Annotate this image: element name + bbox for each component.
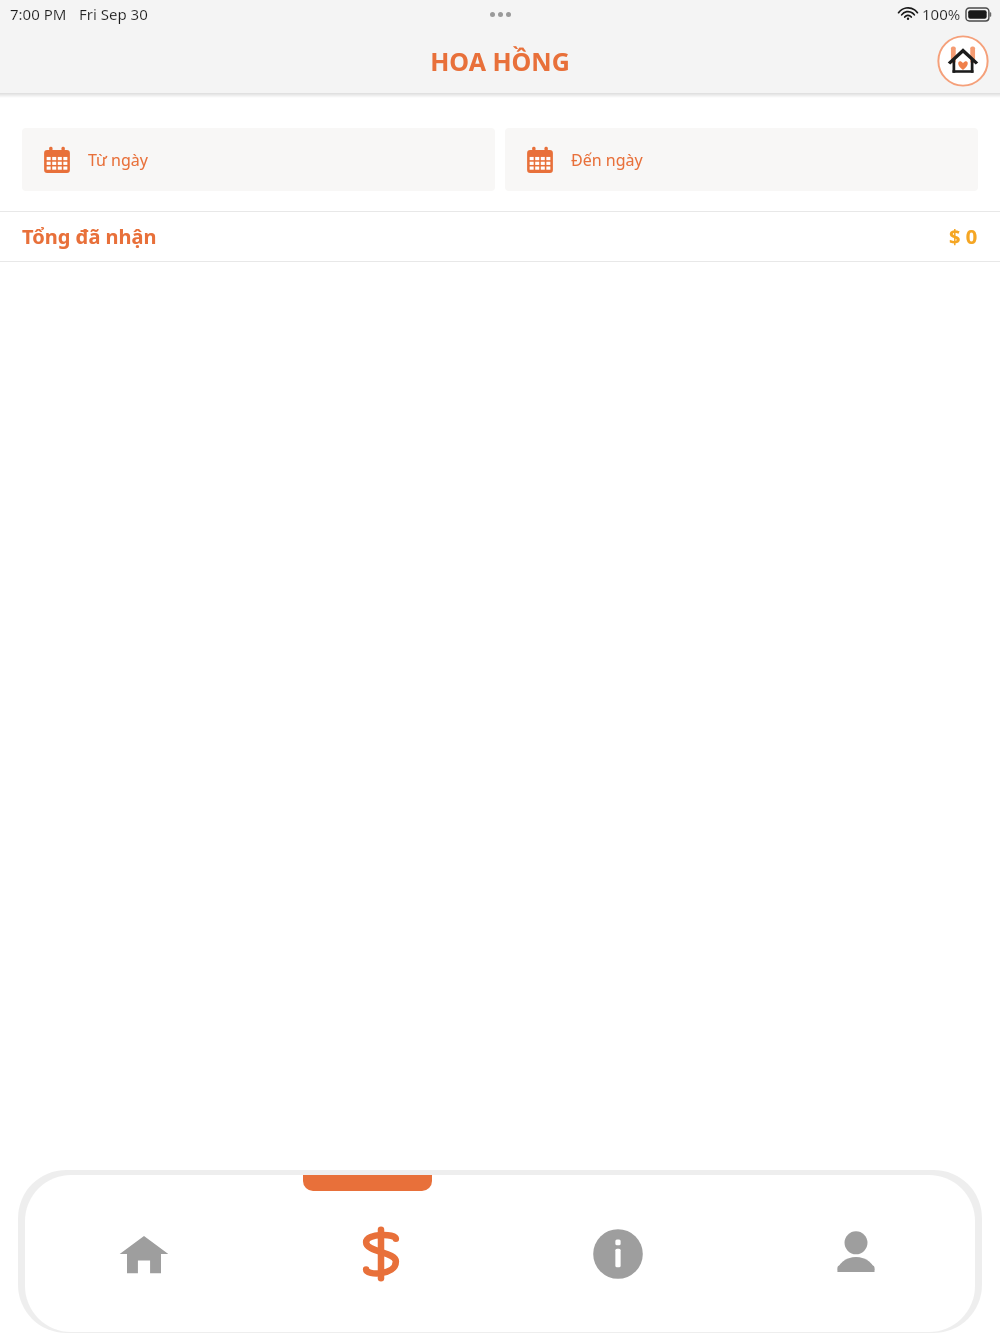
button[interactable]: Home — [25, 1175, 262, 1332]
staticText: $ 0 — [949, 223, 978, 250]
staticText: HOA HỒNG — [430, 44, 570, 78]
button[interactable]: Đến ngày — [505, 128, 978, 191]
staticText: 7:00 PM — [10, 4, 67, 24]
button[interactable]: Home logo — [934, 32, 992, 90]
button[interactable]: Tổng đã nhận — [0, 212, 1000, 261]
button[interactable]: Account — [737, 1175, 975, 1332]
staticText: Đến ngày — [571, 149, 643, 171]
button[interactable]: Information — [499, 1175, 737, 1332]
staticText: Từ ngày — [88, 149, 148, 171]
staticText: Fri Sep 30 — [79, 4, 148, 24]
staticText: 100% — [922, 4, 961, 24]
button[interactable]: Commission — [262, 1175, 499, 1332]
button[interactable]: Từ ngày — [22, 128, 495, 191]
staticText: Tổng đã nhận — [22, 223, 157, 250]
